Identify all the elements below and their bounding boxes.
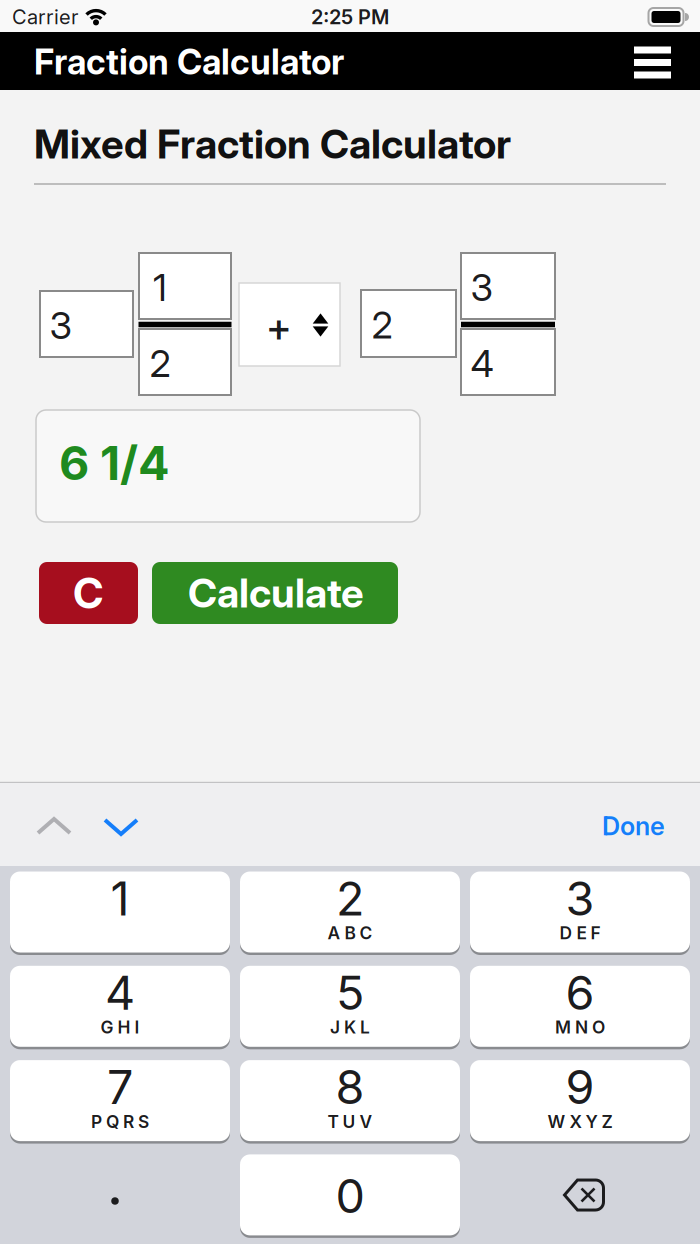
staticText: 2:25 PM <box>311 5 389 29</box>
staticText: 2 <box>149 341 170 385</box>
staticText: 6 1/4 <box>59 435 170 491</box>
staticText: + <box>266 303 292 351</box>
staticText: 3 <box>470 265 493 309</box>
staticText: 6 <box>565 965 594 1020</box>
staticText: P Q R S <box>91 1111 149 1132</box>
staticText: J K L <box>330 1017 370 1037</box>
staticText: 0 <box>335 1168 364 1223</box>
staticText: 9 <box>565 1060 594 1115</box>
staticText: 4 <box>105 965 135 1020</box>
staticText: 1 <box>110 871 129 926</box>
staticText: 4 <box>470 341 493 385</box>
staticText: G H I <box>100 1017 139 1037</box>
staticText: T U V <box>327 1111 372 1132</box>
staticText: 2 <box>336 871 364 926</box>
staticText: Done <box>602 811 665 841</box>
staticText: C <box>72 568 104 618</box>
staticText: D E F <box>559 923 600 943</box>
staticText: 2 <box>371 303 392 347</box>
staticText: 1 <box>153 265 167 309</box>
staticText: 7 <box>107 1060 133 1115</box>
staticText: Fraction Calculator <box>34 42 344 82</box>
staticText: 3 <box>565 871 594 926</box>
staticText: M N O <box>555 1017 605 1037</box>
staticText: 3 <box>49 303 72 347</box>
staticText: A B C <box>327 923 372 943</box>
staticText: W X Y Z <box>547 1111 612 1132</box>
staticText: 8 <box>335 1060 364 1115</box>
staticText: Calculate <box>188 569 364 617</box>
staticText: Carrier <box>12 5 78 29</box>
staticText: Mixed Fraction Calculator <box>34 120 511 168</box>
staticText: 5 <box>336 965 364 1020</box>
